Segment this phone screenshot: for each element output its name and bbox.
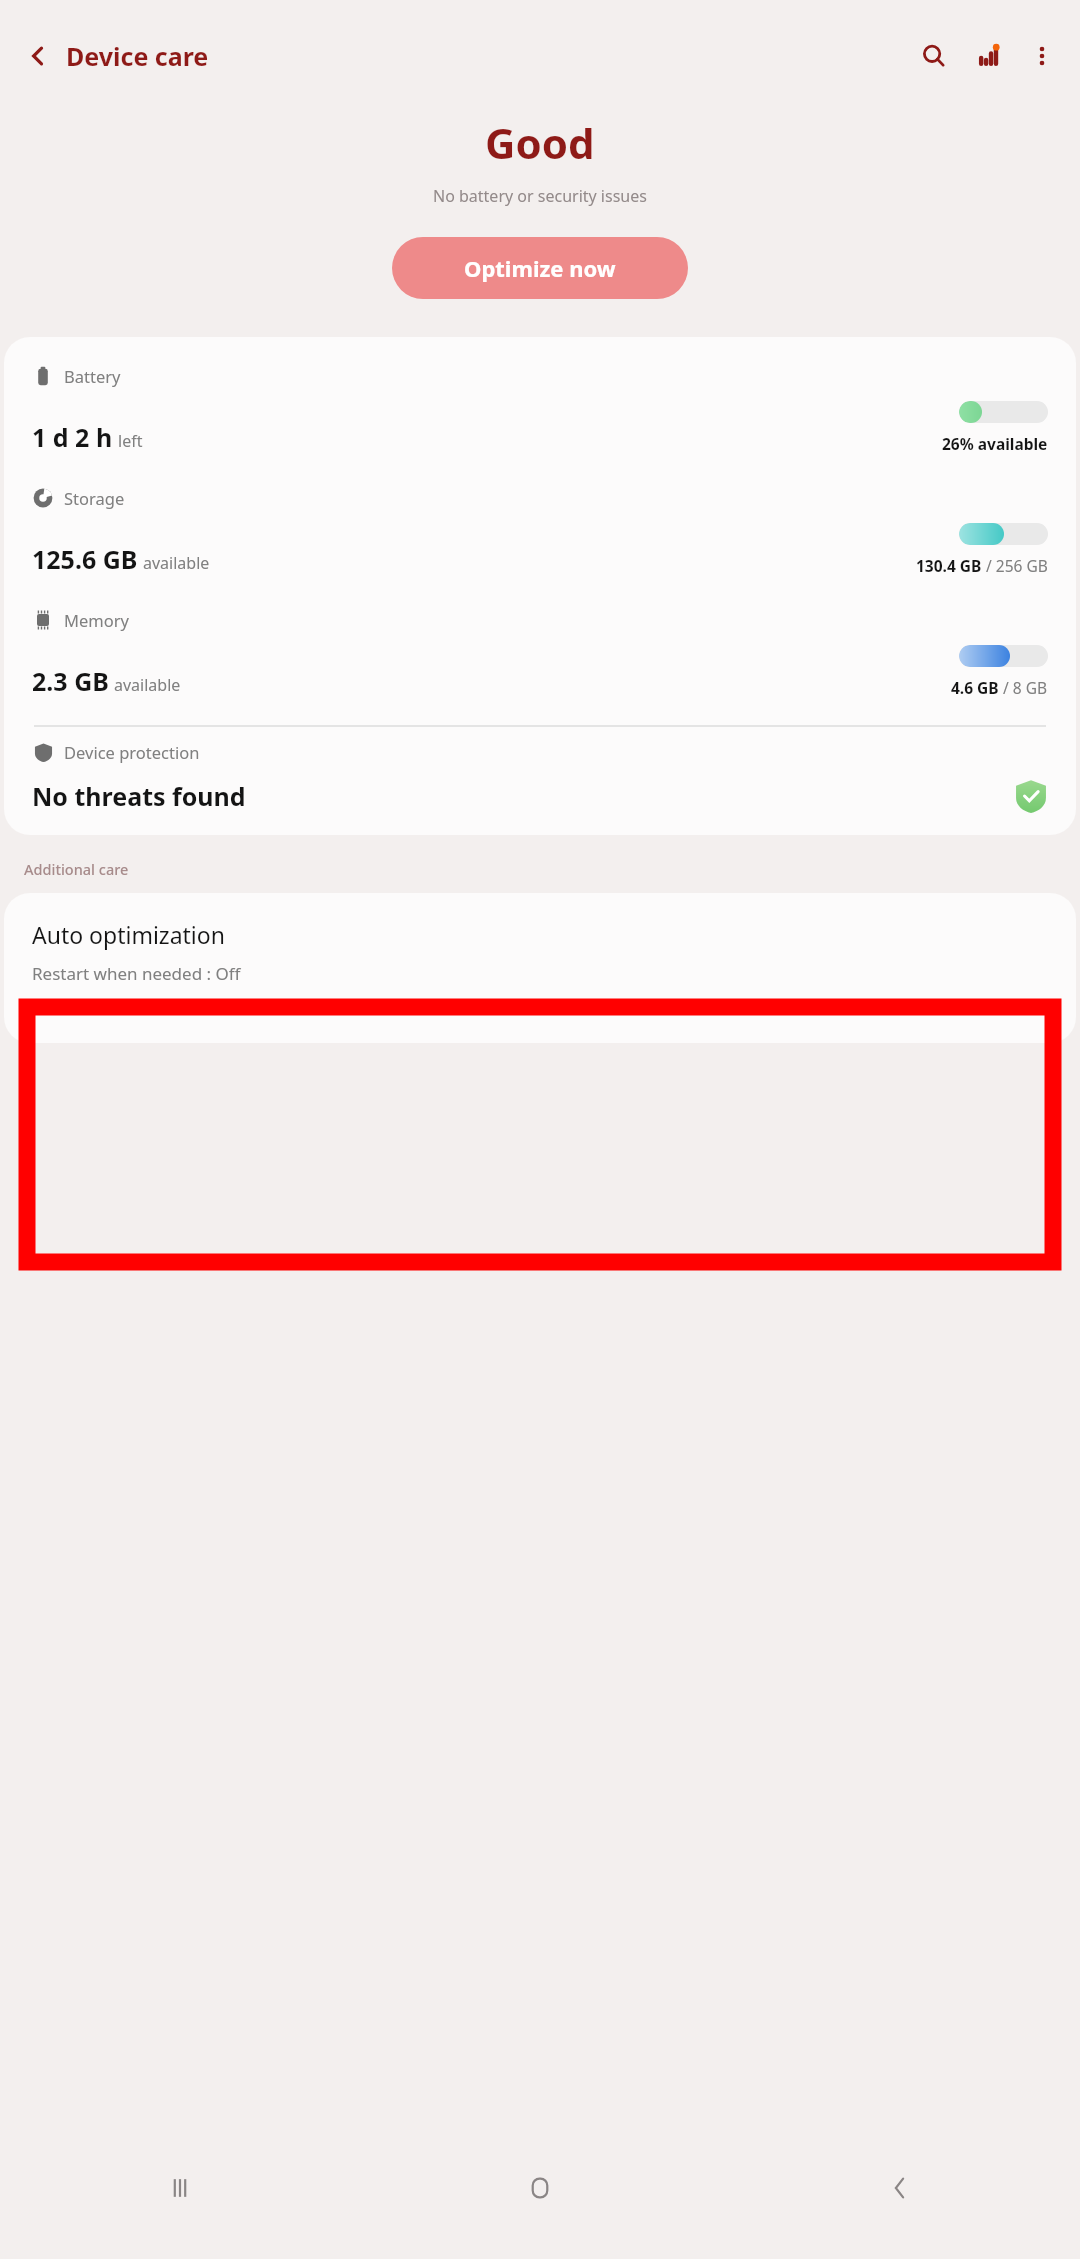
button[interactable]: Recents <box>0 2117 360 2259</box>
staticText: / 256 GB <box>982 555 1048 576</box>
staticText: Auto optimization <box>32 919 225 950</box>
staticText: Memory <box>64 609 129 631</box>
staticText: No battery or security issues <box>433 185 647 207</box>
staticText: / 8 GB <box>999 677 1048 698</box>
staticText: 125.6 GB <box>32 542 138 576</box>
staticText: Storage <box>64 487 125 509</box>
staticText: Restart when needed : Off <box>32 962 241 985</box>
staticText: 2.3 GB <box>32 664 109 698</box>
staticText: Good <box>485 114 595 171</box>
staticText: 4.6 GB <box>951 677 999 698</box>
staticText: Additional care <box>24 859 129 879</box>
button[interactable]: More options <box>1018 32 1066 80</box>
staticText: 130.4 GB <box>916 555 982 576</box>
button[interactable]: Auto optimization <box>4 893 1076 1011</box>
button[interactable]: Optimize now <box>392 237 688 299</box>
button[interactable]: Search <box>910 32 958 80</box>
staticText: Optimize now <box>464 253 616 283</box>
staticText: left <box>118 430 143 452</box>
button[interactable]: Memory <box>4 597 1076 719</box>
staticText: Device protection <box>64 741 200 763</box>
staticText: available <box>143 552 210 574</box>
staticText: available <box>114 674 181 696</box>
button[interactable]: Usage statistics <box>966 32 1014 80</box>
staticText: 1 d 2 h <box>32 420 113 454</box>
button[interactable]: Back <box>14 32 62 80</box>
staticText: Battery <box>64 365 121 387</box>
button[interactable]: Home <box>360 2117 720 2259</box>
button[interactable]: Storage <box>4 475 1076 597</box>
staticText: Device care <box>66 39 209 73</box>
button[interactable]: Battery <box>4 353 1076 475</box>
staticText: No threats found <box>32 779 246 813</box>
button[interactable]: Device protection <box>4 741 1076 813</box>
button[interactable]: Back <box>720 2117 1080 2259</box>
staticText: 26% available <box>942 433 1048 454</box>
